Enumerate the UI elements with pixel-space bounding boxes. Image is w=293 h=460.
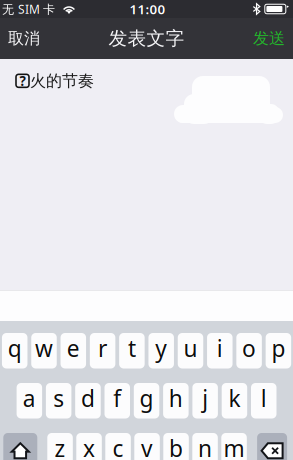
staticText: x: [83, 433, 95, 460]
staticText: h: [169, 383, 183, 413]
staticText: o: [242, 333, 256, 363]
button[interactable]: b: [163, 433, 189, 460]
button[interactable]: z: [47, 433, 73, 460]
staticText: m: [224, 433, 245, 460]
staticText: 无 SIM 卡: [2, 1, 55, 17]
staticText: j: [202, 383, 208, 413]
staticText: 11:00: [129, 0, 165, 18]
button[interactable]: i: [207, 333, 233, 368]
staticText: g: [140, 383, 154, 413]
button[interactable]: Shift: [3, 433, 37, 460]
button[interactable]: n: [192, 433, 218, 460]
button[interactable]: v: [134, 433, 160, 460]
staticText: n: [198, 433, 212, 460]
button[interactable]: j: [192, 383, 218, 418]
staticText: t: [128, 333, 136, 363]
staticText: v: [141, 433, 153, 460]
button[interactable]: t: [119, 333, 145, 368]
staticText: y: [155, 333, 167, 363]
staticText: ?: [19, 72, 25, 90]
button[interactable]: 取消: [0, 18, 48, 59]
button[interactable]: r: [90, 333, 115, 368]
button[interactable]: g: [134, 383, 159, 418]
staticText: z: [54, 433, 65, 460]
button[interactable]: s: [46, 383, 71, 418]
button[interactable]: u: [178, 333, 203, 368]
staticText: 发送: [253, 29, 285, 48]
staticText: r: [98, 333, 107, 363]
button[interactable]: m: [221, 433, 247, 460]
button[interactable]: Delete: [257, 433, 287, 460]
staticText: 发表文字: [108, 27, 184, 50]
button[interactable]: y: [148, 333, 174, 368]
staticText: i: [217, 333, 223, 363]
staticText: u: [183, 333, 197, 363]
button[interactable]: c: [105, 433, 131, 460]
staticText: s: [53, 383, 64, 413]
staticText: d: [81, 383, 95, 413]
button[interactable]: x: [76, 433, 102, 460]
staticText: a: [23, 383, 36, 413]
button[interactable]: h: [163, 383, 189, 418]
button[interactable]: e: [61, 333, 86, 368]
staticText: k: [228, 383, 240, 413]
staticText: c: [112, 433, 123, 460]
staticText: f: [113, 383, 121, 413]
button[interactable]: a: [17, 383, 42, 418]
staticText: 取消: [8, 29, 40, 48]
staticText: b: [169, 433, 183, 460]
staticText: 火的节奏: [30, 71, 94, 91]
button[interactable]: q: [2, 333, 27, 368]
button[interactable]: d: [75, 383, 101, 418]
button[interactable]: p: [266, 333, 291, 368]
staticText: p: [271, 333, 285, 363]
button[interactable]: o: [236, 333, 262, 368]
button[interactable]: l: [251, 383, 276, 418]
button[interactable]: w: [31, 333, 57, 368]
staticText: l: [261, 383, 267, 413]
staticText: e: [67, 333, 80, 363]
button[interactable]: f: [104, 383, 130, 418]
staticText: w: [35, 333, 53, 363]
staticText: q: [8, 333, 22, 363]
button[interactable]: k: [222, 383, 247, 418]
button[interactable]: 发送: [245, 18, 293, 59]
